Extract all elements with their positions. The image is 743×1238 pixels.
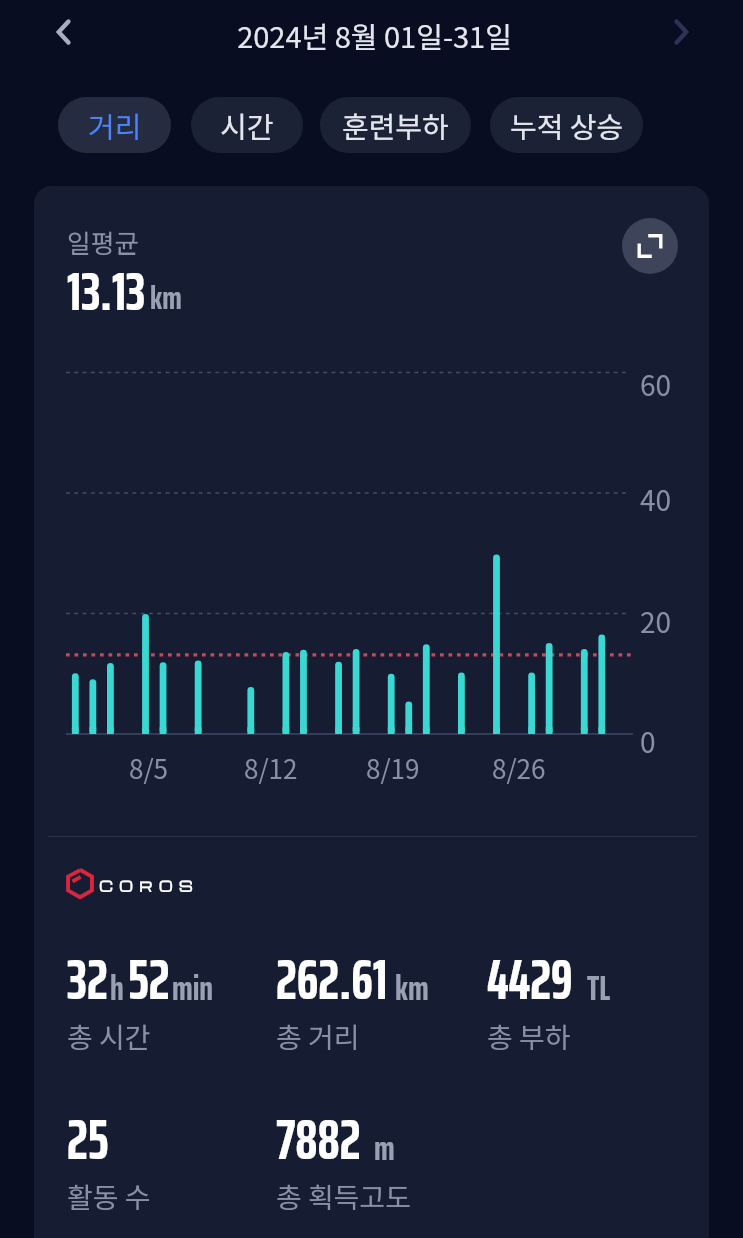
staticText: 20 (640, 601, 672, 642)
staticText: 52 (128, 937, 170, 1024)
button[interactable]: Next month (655, 6, 707, 58)
staticText: 누적 상승 (510, 104, 624, 146)
staticText: 25 (67, 1097, 109, 1184)
staticText: 8/19 (366, 749, 420, 787)
staticText: 시간 (220, 104, 274, 146)
staticText: 일평균 (67, 223, 139, 261)
staticText: 총 획득고도 (276, 1176, 412, 1217)
staticText: 8/5 (129, 749, 169, 787)
staticText: 총 거리 (276, 1016, 360, 1057)
staticText: 60 (640, 364, 672, 405)
button[interactable]: 거리 (58, 97, 171, 153)
staticText: 7882 (276, 1097, 361, 1184)
staticText: km (150, 272, 182, 324)
staticText: 훈련부하 (342, 104, 449, 146)
staticText: 활동 수 (67, 1176, 151, 1217)
button[interactable]: Expand chart (622, 218, 678, 274)
staticText: 262.61 (276, 937, 388, 1024)
staticText: 8/12 (244, 749, 298, 787)
staticText: h (110, 960, 124, 1015)
staticText: COROS (99, 877, 199, 895)
button[interactable]: 시간 (191, 97, 303, 153)
staticText: 총 부하 (487, 1016, 571, 1057)
staticText: 2024년 8월 01일-31일 (3, 14, 743, 56)
staticText: 4429 (487, 937, 573, 1024)
staticText: km (395, 960, 429, 1015)
staticText: TL (587, 960, 611, 1015)
staticText: 40 (640, 479, 672, 520)
button[interactable]: 누적 상승 (490, 97, 643, 153)
button[interactable]: 훈련부하 (320, 97, 471, 153)
staticText: 8/26 (492, 749, 546, 787)
staticText: 0 (640, 721, 656, 762)
staticText: min (172, 960, 214, 1015)
staticText: 13.13 (67, 250, 146, 333)
staticText: 총 시간 (67, 1016, 151, 1057)
staticText: m (374, 1120, 395, 1175)
staticText: 거리 (88, 104, 142, 146)
staticText: 32 (67, 937, 108, 1024)
button[interactable]: Previous month (38, 6, 90, 58)
